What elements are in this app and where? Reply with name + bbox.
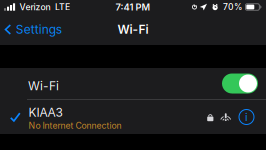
staticText: Settings (16, 22, 62, 37)
button[interactable]: KIAA3 (0, 100, 266, 134)
button[interactable]: Settings (0, 14, 68, 45)
staticText: Wi-Fi (28, 79, 59, 93)
staticText: Verizon (19, 2, 50, 12)
staticText: LTE (55, 2, 70, 12)
staticText: 70% (223, 2, 242, 12)
staticText: i (245, 110, 248, 123)
staticText: 7:41 PM (115, 1, 150, 13)
staticText: Wi-Fi (117, 22, 148, 37)
staticText: KIAA3 (28, 105, 62, 120)
staticText: No Internet Connection (28, 120, 121, 131)
button[interactable]: Wi-Fi (0, 68, 266, 99)
